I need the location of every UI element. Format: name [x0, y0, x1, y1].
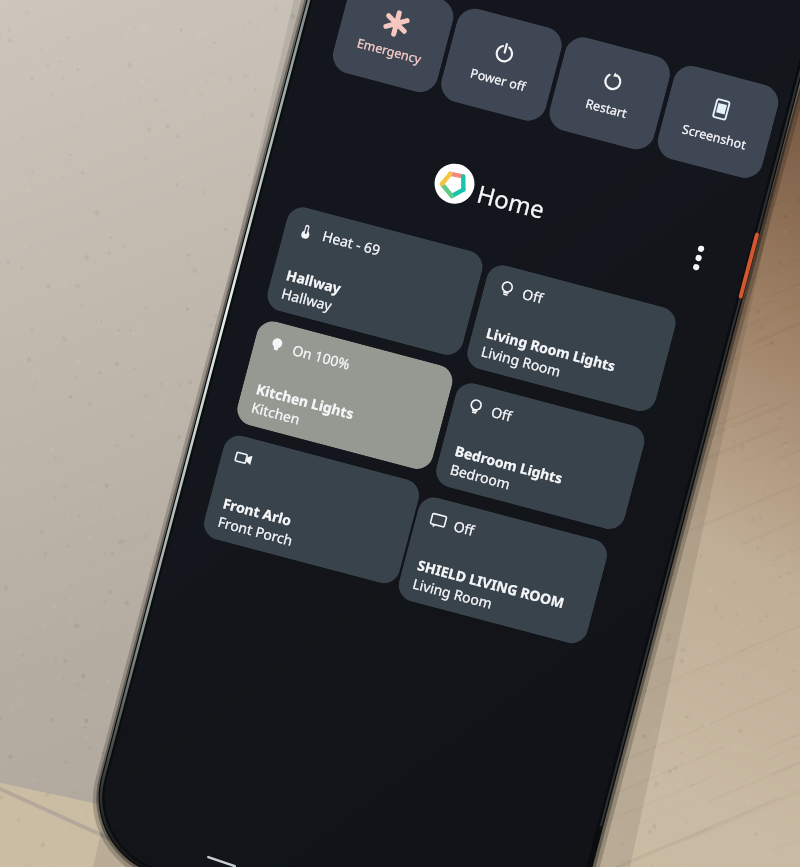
staticText: Bedroom Lights: [453, 441, 565, 488]
staticText: Heat - 69: [320, 226, 382, 259]
button[interactable]: On 100%: [233, 318, 456, 473]
button[interactable]: Off: [432, 379, 648, 533]
button[interactable]: Power off: [437, 4, 566, 125]
staticText: Living Room Lights: [484, 323, 618, 375]
staticText: Emergency: [355, 34, 423, 68]
staticText: Restart: [583, 95, 629, 122]
button[interactable]: Heat - 69: [264, 203, 486, 359]
staticText: Hallway: [284, 265, 343, 298]
button[interactable]: Off: [395, 494, 611, 647]
staticText: On 100%: [290, 340, 352, 374]
staticText: Off: [489, 402, 514, 426]
staticText: Front Porch: [216, 512, 295, 550]
button[interactable]: Front Arlo: [200, 432, 423, 587]
staticText: Bedroom: [448, 459, 513, 494]
staticText: Off: [520, 284, 546, 308]
staticText: Living Room: [479, 341, 563, 381]
button[interactable]: Off: [463, 261, 679, 415]
button[interactable]: More options: [683, 241, 712, 281]
staticText: Living Room: [411, 574, 495, 613]
staticText: Kitchen: [249, 398, 303, 429]
staticText: Screenshot: [680, 120, 748, 154]
staticText: Kitchen Lights: [254, 379, 357, 423]
staticText: Off: [452, 516, 477, 540]
staticText: Front Arlo: [221, 493, 294, 530]
button[interactable]: Screenshot: [653, 62, 782, 182]
staticText: SHIELD LIVING ROOM: [416, 555, 566, 612]
staticText: Power off: [468, 64, 528, 95]
button[interactable]: Emergency: [329, 0, 458, 96]
staticText: Home: [474, 176, 549, 226]
staticText: Hallway: [279, 283, 335, 315]
button[interactable]: Restart: [545, 33, 674, 153]
